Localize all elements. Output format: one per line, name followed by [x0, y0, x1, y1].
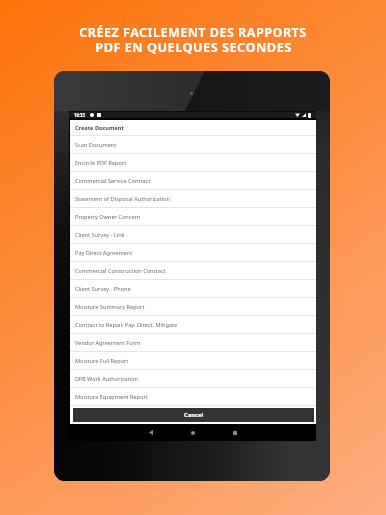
button[interactable]: Pay Direct Agreement: [70, 244, 316, 262]
staticText: Contract to Repair, Pay, Direct, Mitigat…: [75, 321, 178, 329]
staticText: CRÉEZ FACILEMENT DES RAPPORTS: [79, 24, 307, 41]
button[interactable]: Client Survey - Link: [70, 226, 316, 244]
staticText: Moisture Equipment Report: [75, 393, 148, 401]
button[interactable]: Encircle PDF Report: [70, 154, 316, 172]
staticText: Create Document: [75, 124, 124, 132]
button[interactable]: Home: [181, 424, 205, 441]
button[interactable]: Property Owner Concern: [70, 208, 316, 226]
staticText: Vendor Agreement Form: [75, 339, 141, 347]
button[interactable]: Moisture Summary Report: [70, 298, 316, 316]
button[interactable]: Recent apps: [223, 424, 247, 441]
staticText: Client Survey - Link: [75, 231, 125, 239]
staticText: PDF EN QUELQUES SECONDES: [95, 38, 292, 55]
button[interactable]: Commercial Service Contract: [70, 172, 316, 190]
button[interactable]: Scan Document: [70, 136, 316, 154]
staticText: Commercial Service Contract: [75, 177, 151, 185]
staticText: DFB Work Authorization: [75, 375, 139, 383]
button[interactable]: Cancel: [73, 408, 314, 422]
staticText: Pay Direct Agreement: [75, 249, 133, 257]
staticText: Client Survey - Phone: [75, 285, 131, 293]
staticText: Moisture Full Report: [75, 357, 129, 365]
staticText: Moisture Summary Report: [75, 303, 145, 311]
button[interactable]: Moisture Equipment Report: [70, 388, 316, 406]
staticText: Property Owner Concern: [75, 213, 141, 221]
staticText: Cancel: [184, 411, 204, 419]
staticText: Scan Document: [75, 141, 117, 149]
staticText: 10:33: [74, 112, 86, 118]
button[interactable]: Statement of Disposal Authorization: [70, 190, 316, 208]
button[interactable]: Vendor Agreement Form: [70, 334, 316, 352]
button[interactable]: Back: [139, 424, 163, 441]
staticText: Statement of Disposal Authorization: [75, 195, 170, 203]
staticText: Encircle PDF Report: [75, 159, 127, 167]
button[interactable]: Client Survey - Phone: [70, 280, 316, 298]
button[interactable]: Commercial Construction Contract: [70, 262, 316, 280]
button[interactable]: Contract to Repair, Pay, Direct, Mitigat…: [70, 316, 316, 334]
staticText: Commercial Construction Contract: [75, 267, 166, 275]
button[interactable]: DFB Work Authorization: [70, 370, 316, 388]
button[interactable]: Moisture Full Report: [70, 352, 316, 370]
